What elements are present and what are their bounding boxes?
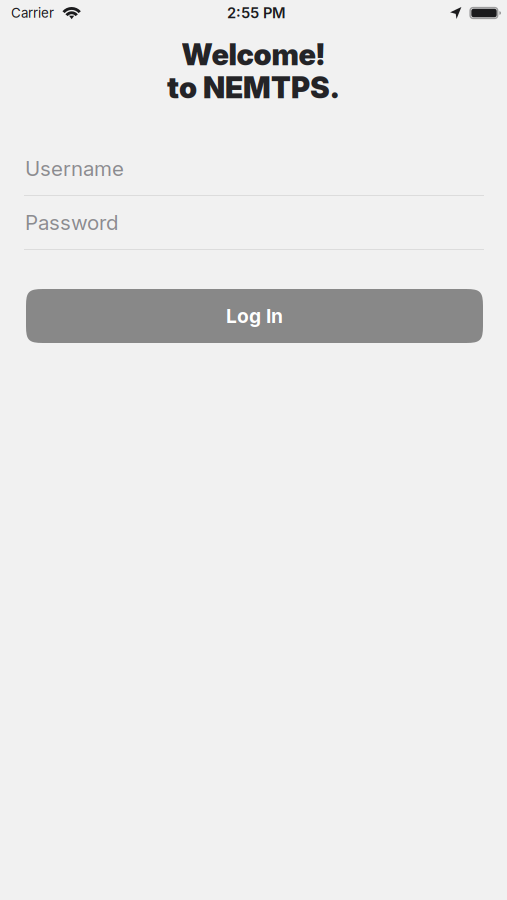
staticText: Username [25,156,124,181]
staticText: Welcome! [181,37,325,72]
staticText: Password [25,210,119,235]
staticText: 2:55 PM [227,4,286,22]
staticText: Carrier [11,5,54,21]
button[interactable]: Log In [26,289,483,343]
button[interactable]: Password [24,196,484,250]
staticText: to NEMTPS. [167,70,340,105]
staticText: Log In [226,304,283,328]
button[interactable]: Username [24,142,484,196]
